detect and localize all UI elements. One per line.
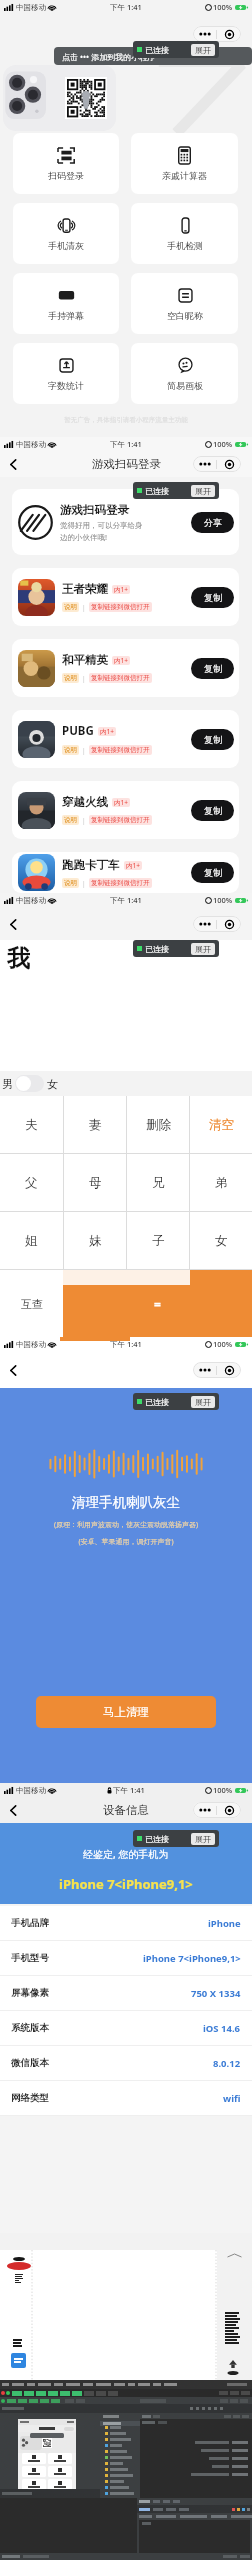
button[interactable]: Back bbox=[2, 453, 24, 475]
button[interactable]: 扫码登录 bbox=[13, 133, 119, 194]
staticText: 中国移动 bbox=[16, 3, 46, 12]
staticText: 下午 1:41 bbox=[110, 1339, 142, 1349]
button[interactable]: 复制 bbox=[191, 587, 234, 608]
staticText: 100% bbox=[213, 1785, 233, 1795]
button[interactable]: 简易画板 bbox=[131, 343, 238, 404]
staticText: iPhone 7<iPhone9,1> bbox=[143, 1952, 241, 1965]
button[interactable]: 弟 bbox=[190, 1154, 252, 1211]
button[interactable]: 展开 bbox=[191, 943, 215, 955]
button[interactable]: 马上清理 bbox=[36, 1696, 216, 1728]
button[interactable]: More bbox=[193, 916, 216, 932]
button[interactable]: 手机检测 bbox=[131, 203, 238, 264]
staticText: 100% bbox=[213, 2, 233, 12]
button[interactable]: 展开 bbox=[191, 1833, 215, 1845]
staticText: | bbox=[82, 746, 86, 755]
staticText: (原理：利用声波震动，使灰尘震动脱落扬声器) bbox=[0, 1520, 252, 1530]
button[interactable]: 字数统计 bbox=[13, 343, 119, 404]
staticText: PUBG bbox=[62, 723, 94, 739]
button[interactable]: 微信版本 bbox=[0, 2046, 252, 2080]
button[interactable]: 系统版本 bbox=[0, 2011, 252, 2045]
button[interactable]: 亲戚计算器 bbox=[131, 133, 238, 194]
button[interactable]: 女 bbox=[190, 1212, 252, 1269]
button[interactable]: 王者荣耀 bbox=[12, 568, 239, 626]
button[interactable]: 分享 bbox=[191, 512, 234, 533]
button[interactable]: Close bbox=[217, 1802, 241, 1818]
staticText: 我 bbox=[7, 944, 30, 973]
button[interactable]: = bbox=[63, 1270, 252, 1337]
button[interactable]: 跑跑卡丁车 bbox=[12, 852, 239, 893]
button[interactable]: 清空 bbox=[190, 1096, 252, 1153]
button[interactable]: PUBG bbox=[12, 710, 239, 768]
button[interactable]: 说明 bbox=[62, 602, 79, 612]
staticText: 觉得好用，可以分享给身 边的小伙伴哦! bbox=[60, 521, 143, 542]
staticText: 已连接 bbox=[145, 486, 169, 496]
button[interactable]: 和平精英 bbox=[12, 639, 239, 697]
button[interactable]: More bbox=[193, 1362, 216, 1378]
button[interactable]: More bbox=[193, 26, 216, 42]
staticText: 复制链接到微信打开 bbox=[91, 674, 150, 682]
staticText: 删除 bbox=[146, 1117, 171, 1133]
button[interactable]: 复制 bbox=[191, 800, 234, 821]
staticText: 已连接 bbox=[145, 1834, 169, 1844]
button[interactable]: 手机品牌 bbox=[0, 1906, 252, 1940]
button[interactable]: Close bbox=[217, 916, 241, 932]
button[interactable]: 手持弹幕 bbox=[13, 273, 119, 334]
button[interactable]: 复制 bbox=[191, 862, 234, 883]
button[interactable]: Back bbox=[2, 1359, 24, 1381]
button[interactable]: 互查 bbox=[0, 1270, 63, 1337]
button[interactable]: 复制 bbox=[191, 729, 234, 750]
button[interactable]: 展开 bbox=[191, 44, 215, 56]
staticText: 手机型号 bbox=[11, 1952, 49, 1964]
staticText: 中国移动 bbox=[16, 896, 46, 905]
button[interactable]: 说明 bbox=[62, 673, 79, 683]
button[interactable]: More bbox=[193, 1802, 216, 1818]
button[interactable]: Close bbox=[217, 1362, 241, 1378]
button[interactable]: 姐 bbox=[0, 1212, 63, 1269]
button[interactable]: 夫 bbox=[0, 1096, 63, 1153]
staticText: 和平精英 bbox=[62, 653, 108, 667]
button[interactable]: 母 bbox=[64, 1154, 126, 1211]
staticText: 说明 bbox=[64, 879, 77, 887]
button[interactable]: 复制 bbox=[191, 658, 234, 679]
staticText: 内1+ bbox=[114, 585, 128, 594]
button[interactable]: 手机型号 bbox=[0, 1941, 252, 1975]
button[interactable]: 说明 bbox=[62, 745, 79, 755]
button[interactable]: 屏幕像素 bbox=[0, 1976, 252, 2010]
staticText: | bbox=[82, 816, 86, 825]
staticText: | bbox=[82, 603, 86, 612]
staticText: 设备信息 bbox=[103, 1803, 149, 1817]
button[interactable]: Close bbox=[217, 456, 241, 472]
button[interactable]: 父 bbox=[0, 1154, 63, 1211]
staticText: 游戏扫码登录 bbox=[92, 457, 161, 471]
button[interactable]: 展开 bbox=[191, 485, 215, 497]
button[interactable]: 空白昵称 bbox=[131, 273, 238, 334]
button[interactable]: Close bbox=[217, 26, 241, 42]
staticText: 展开 bbox=[195, 944, 211, 954]
button[interactable]: More bbox=[193, 456, 216, 472]
button[interactable]: Back bbox=[2, 913, 24, 935]
staticText: 展开 bbox=[195, 1834, 211, 1844]
staticText: 下午 1:41 bbox=[113, 1785, 145, 1795]
button[interactable]: 删除 bbox=[127, 1096, 189, 1153]
staticText: 展开 bbox=[195, 45, 211, 55]
button[interactable]: 说明 bbox=[62, 815, 79, 825]
staticText: 微信版本 bbox=[11, 2057, 49, 2069]
staticText: 手机品牌 bbox=[11, 1917, 49, 1929]
button[interactable]: 妻 bbox=[64, 1096, 126, 1153]
button[interactable]: 游戏扫码登录 bbox=[12, 489, 239, 555]
staticText: 女 bbox=[215, 1233, 228, 1249]
button[interactable]: 手机清灰 bbox=[13, 203, 119, 264]
button[interactable]: 说明 bbox=[62, 878, 79, 888]
button[interactable]: 兄 bbox=[127, 1154, 189, 1211]
button[interactable]: 子 bbox=[127, 1212, 189, 1269]
button[interactable]: 妹 bbox=[64, 1212, 126, 1269]
button[interactable]: Back bbox=[2, 1799, 24, 1821]
button[interactable] bbox=[15, 1075, 44, 1092]
staticText: 王者荣耀 bbox=[62, 582, 108, 596]
staticText: 100% bbox=[213, 1339, 233, 1349]
staticText: 展开 bbox=[195, 1397, 211, 1407]
staticText: 经鉴定, 您的手机为 bbox=[83, 1847, 169, 1861]
button[interactable]: 网络类型 bbox=[0, 2081, 252, 2115]
button[interactable]: 展开 bbox=[191, 1396, 215, 1408]
button[interactable]: 穿越火线 bbox=[12, 781, 239, 839]
